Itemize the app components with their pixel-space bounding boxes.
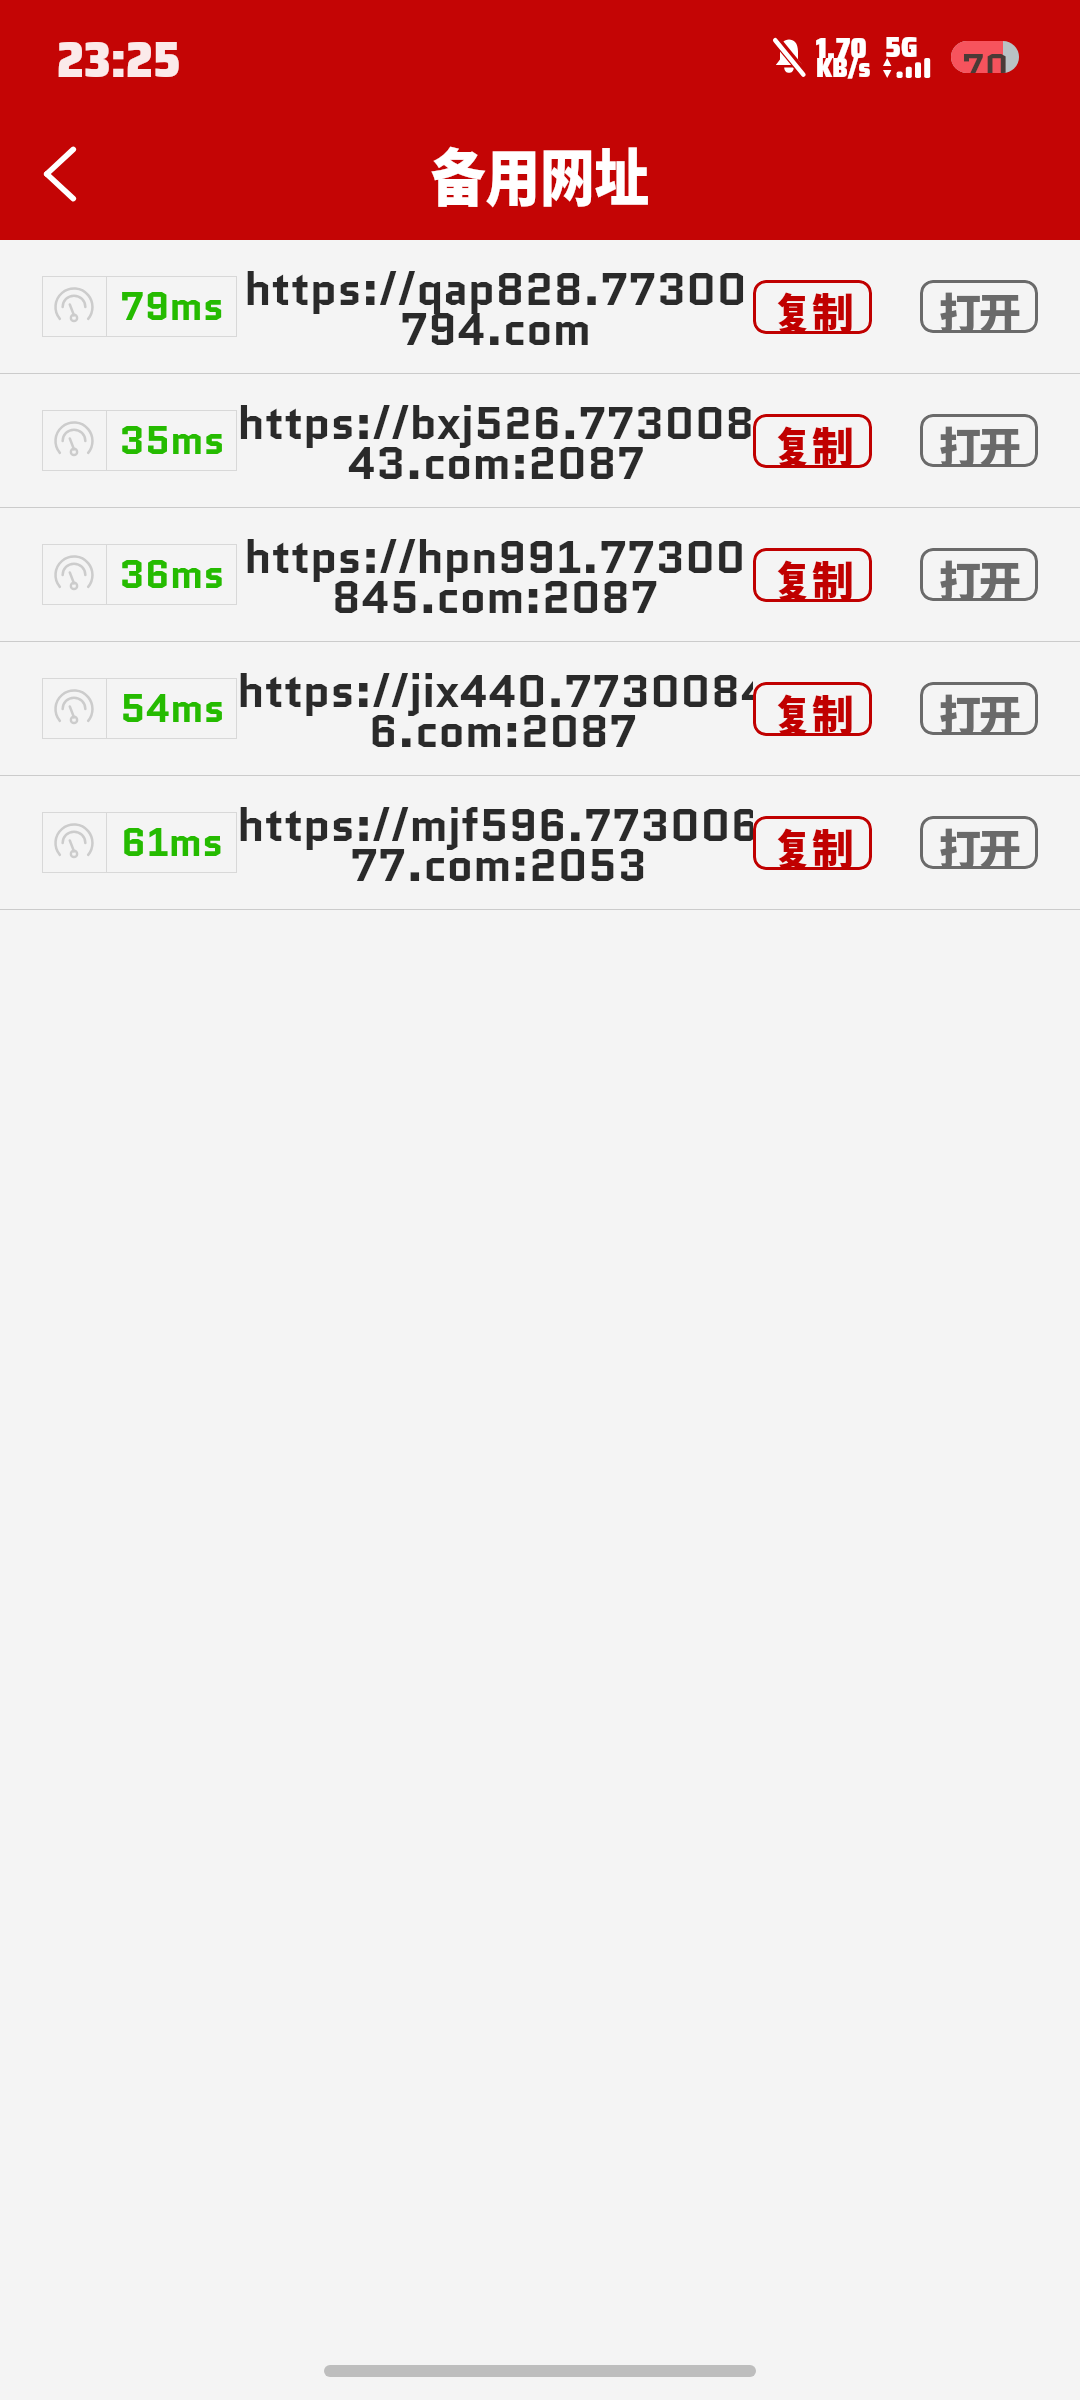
button[interactable]: 复制 — [753, 682, 872, 736]
button[interactable]: Back — [4, 119, 114, 229]
staticText: 复制 — [772, 816, 853, 870]
button[interactable]: 54ms — [0, 642, 1080, 775]
button[interactable]: 复制 — [753, 414, 872, 468]
button[interactable]: 复制 — [753, 548, 872, 602]
staticText: 5G — [885, 24, 918, 66]
button[interactable]: 打开 — [920, 548, 1038, 601]
staticText: 70 — [962, 41, 1009, 73]
button[interactable]: 79ms — [0, 240, 1080, 373]
staticText: 打开 — [939, 548, 1020, 601]
staticText: 复制 — [772, 414, 853, 468]
button[interactable]: 36ms — [0, 508, 1080, 641]
staticText: 23:25 — [57, 20, 181, 99]
button[interactable]: 35ms — [0, 374, 1080, 507]
button[interactable]: 复制 — [753, 280, 872, 334]
button[interactable]: 打开 — [920, 816, 1038, 869]
staticText: 79ms — [120, 279, 225, 335]
staticText: 61ms — [121, 815, 224, 871]
button[interactable]: 打开 — [920, 280, 1038, 333]
staticText: KB/s — [816, 46, 870, 88]
staticText: 1.70 — [816, 25, 867, 67]
staticText: https://hpn991.77300 845.com:2087 — [244, 525, 746, 630]
staticText: 54ms — [120, 681, 225, 737]
staticText: 打开 — [939, 682, 1020, 735]
button[interactable]: 打开 — [920, 682, 1038, 735]
staticText: 复制 — [772, 280, 853, 334]
button[interactable]: 打开 — [920, 414, 1038, 467]
button[interactable]: 复制 — [753, 816, 872, 870]
staticText: 备用网址 — [431, 129, 650, 219]
staticText: https://jix440.7730084 6.com:2087 — [237, 659, 753, 764]
button[interactable]: 61ms — [0, 776, 1080, 909]
staticText: 复制 — [772, 682, 853, 736]
staticText: 复制 — [772, 548, 853, 602]
staticText: https://qap828.77300 794.com — [244, 257, 747, 362]
staticText: 打开 — [939, 414, 1020, 467]
staticText: 36ms — [119, 547, 225, 603]
staticText: https://mjf596.773006 77.com:2053 — [237, 793, 753, 898]
staticText: 35ms — [119, 413, 225, 469]
staticText: 打开 — [939, 280, 1020, 333]
staticText: https://bxj526.773008 43.com:2087 — [237, 391, 753, 496]
staticText: 打开 — [939, 816, 1020, 869]
